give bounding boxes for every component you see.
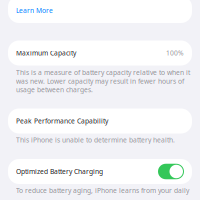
staticText: Optimized Battery Charging	[16, 167, 103, 176]
staticText: This iPhone is unable to determine batte…	[16, 135, 175, 144]
staticText: was new. Lower capacity may result in fe…	[16, 77, 184, 85]
staticText: Peak Performance Capability	[16, 117, 108, 125]
staticText: To reduce battery aging, iPhone learns f…	[16, 186, 189, 195]
staticText: This is a measure of battery capacity re…	[16, 68, 190, 77]
staticText: 100%	[166, 49, 184, 57]
staticText: usage between charges.	[16, 85, 93, 94]
button[interactable]: Maximum Capacity	[8, 40, 192, 65]
staticText: Maximum Capacity	[16, 49, 76, 57]
button[interactable]: Learn More	[8, 0, 192, 23]
staticText: Learn More	[16, 6, 53, 15]
button[interactable]: Peak Performance Capability	[8, 108, 192, 133]
button[interactable]: Optimized Battery Charging	[8, 159, 192, 184]
